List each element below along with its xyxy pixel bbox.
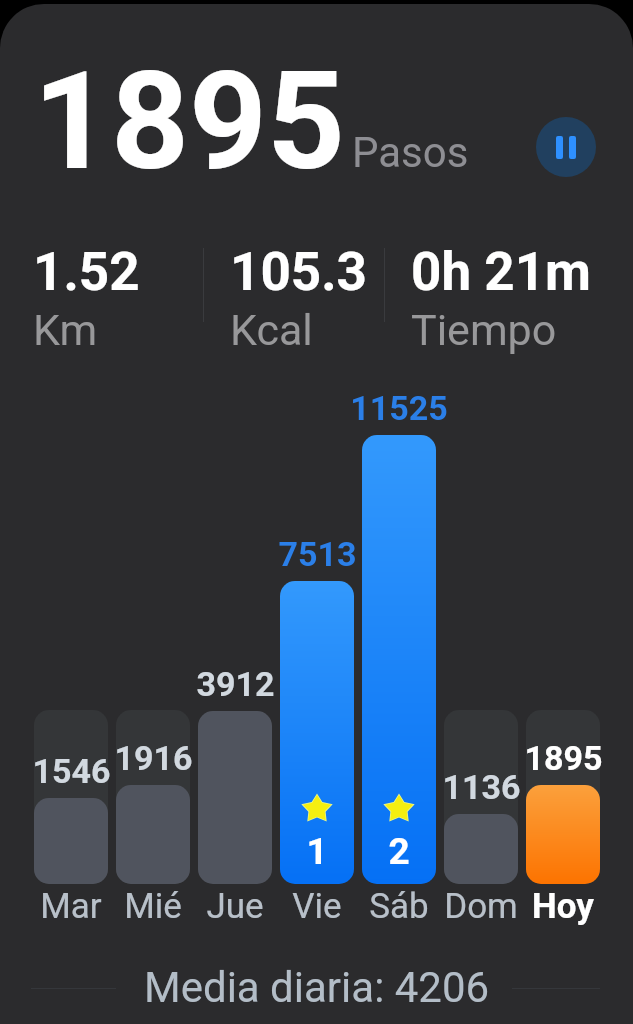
staticText: Vie <box>292 886 342 927</box>
staticText: Jue <box>206 886 264 927</box>
staticText: 105.3 <box>230 241 368 303</box>
staticText: 1916 <box>114 738 193 778</box>
staticText: 7513 <box>278 534 357 574</box>
staticText: Mar <box>40 886 102 927</box>
button[interactable] <box>444 814 518 884</box>
button[interactable] <box>444 710 518 884</box>
staticText: Sáb <box>369 886 429 927</box>
button[interactable] <box>116 710 190 884</box>
button[interactable] <box>34 798 108 884</box>
staticText: 0h 21m <box>411 241 591 303</box>
button[interactable] <box>198 711 272 884</box>
staticText: 1 <box>306 830 328 873</box>
staticText: 1136 <box>442 767 521 807</box>
staticText: Kcal <box>230 305 313 355</box>
staticText: 1.52 <box>33 241 140 303</box>
staticText: 1895 <box>524 738 603 778</box>
staticText: 1546 <box>32 751 111 791</box>
staticText: Tiempo <box>411 305 557 355</box>
button[interactable] <box>280 581 354 884</box>
staticText: 3912 <box>196 664 275 704</box>
staticText: Mié <box>124 886 182 927</box>
staticText: Dom <box>444 886 518 927</box>
button[interactable] <box>526 785 600 884</box>
staticText: 2 <box>388 830 410 873</box>
button[interactable] <box>34 710 108 884</box>
staticText: Hoy <box>532 886 594 927</box>
staticText: Pasos <box>352 128 469 177</box>
staticText: 11525 <box>350 388 448 428</box>
staticText: Media diaria: 4206 <box>144 963 490 1012</box>
button[interactable] <box>116 785 190 884</box>
staticText: 1895 <box>33 42 346 201</box>
staticText: Km <box>33 305 98 355</box>
button[interactable]: Pause <box>536 117 596 177</box>
button[interactable] <box>362 435 436 884</box>
button[interactable] <box>526 710 600 884</box>
